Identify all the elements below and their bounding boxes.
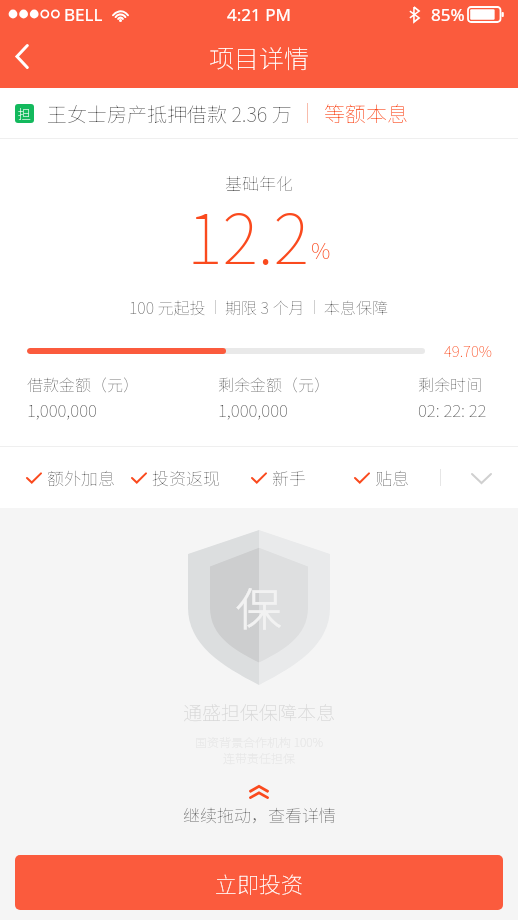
staticText: 12.2	[187, 185, 309, 283]
staticText: 基础年化	[0, 170, 518, 195]
staticText: 立即投资	[215, 867, 304, 899]
button[interactable]: Expand details	[456, 456, 506, 500]
staticText: %	[311, 233, 331, 265]
button[interactable]: Back	[0, 28, 46, 88]
button[interactable]: 额外加息	[27, 465, 115, 490]
button[interactable]: 立即投资	[15, 855, 503, 910]
staticText: 通盛担保保障本息	[183, 698, 336, 726]
staticText: 02: 22: 22	[418, 397, 487, 422]
staticText: 100 元起投	[129, 295, 206, 318]
staticText: 剩余金额（元）	[218, 372, 331, 395]
staticText: 本息保障	[324, 295, 389, 318]
staticText: 连带责任担保	[223, 749, 296, 766]
staticText: 新手	[272, 465, 306, 490]
staticText: 项目详情	[209, 39, 310, 75]
staticText: 贴息	[375, 465, 409, 490]
staticText: 王女士房产抵押借款 2.36 万	[47, 99, 292, 128]
staticText: 国资背景合作机构 100%	[195, 733, 323, 750]
staticText: 保	[236, 574, 282, 639]
button[interactable]: 新手	[252, 465, 306, 490]
button[interactable]: 投资返现	[132, 465, 220, 490]
staticText: 1,000,000	[218, 397, 288, 422]
staticText: 继续拖动，查看详情	[183, 802, 336, 827]
staticText: 1,000,000	[27, 397, 97, 422]
staticText: 等额本息	[324, 98, 408, 128]
staticText: 投资返现	[152, 465, 220, 490]
staticText: BELL	[64, 3, 103, 26]
staticText: 担	[18, 104, 32, 123]
staticText: 85%	[431, 3, 465, 26]
button[interactable]: 贴息	[355, 465, 409, 490]
staticText: 4:21 PM	[227, 3, 291, 26]
staticText: 额外加息	[47, 465, 115, 490]
staticText: 49.70%	[444, 340, 492, 362]
staticText: 剩余时间	[418, 372, 483, 395]
staticText: 借款金额（元）	[27, 372, 140, 395]
staticText: 期限 3 个月	[225, 295, 305, 318]
